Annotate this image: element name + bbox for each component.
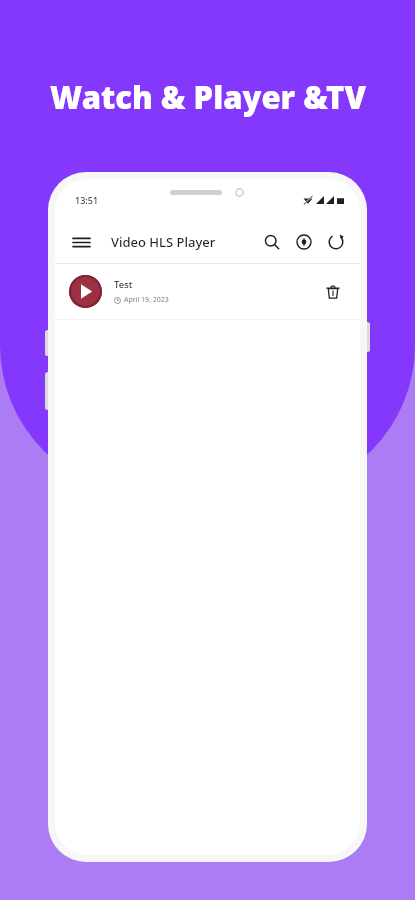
- button[interactable]: Open navigation menu: [65, 226, 97, 258]
- staticText: 13:51: [75, 194, 99, 206]
- staticText: April 19, 2023: [124, 295, 169, 305]
- button[interactable]: Test: [55, 264, 360, 319]
- staticText: Watch & Player &TV: [50, 76, 366, 118]
- button[interactable]: Search: [256, 226, 288, 258]
- staticText: Video HLS Player: [111, 233, 216, 251]
- button[interactable]: Add stream: [288, 226, 320, 258]
- button[interactable]: Refresh: [320, 226, 352, 258]
- staticText: Test: [114, 278, 133, 291]
- button[interactable]: Delete: [318, 277, 348, 307]
